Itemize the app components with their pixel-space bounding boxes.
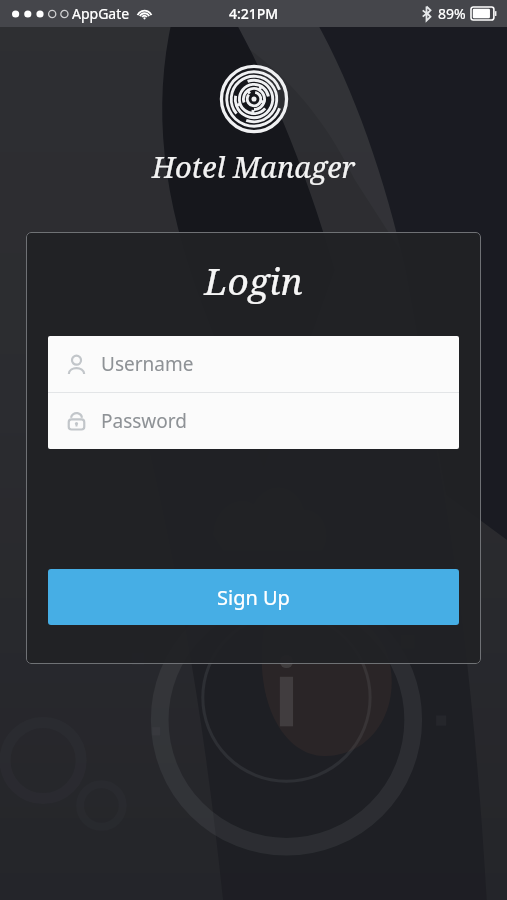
- button[interactable]: Sign Up: [48, 569, 459, 625]
- staticText: Sign Up: [217, 584, 290, 611]
- staticText: Password: [101, 408, 187, 434]
- button[interactable]: Password field: [48, 393, 459, 449]
- staticText: 89%: [438, 4, 466, 23]
- staticText: AppGate: [72, 4, 130, 23]
- button[interactable]: Username field: [48, 336, 459, 392]
- staticText: 4:21PM: [229, 4, 279, 23]
- staticText: Username: [101, 351, 194, 377]
- staticText: Hotel Manager: [0, 147, 507, 186]
- other: Password field: [66, 411, 87, 432]
- other: Username field: [66, 354, 87, 375]
- staticText: Login: [26, 255, 481, 305]
